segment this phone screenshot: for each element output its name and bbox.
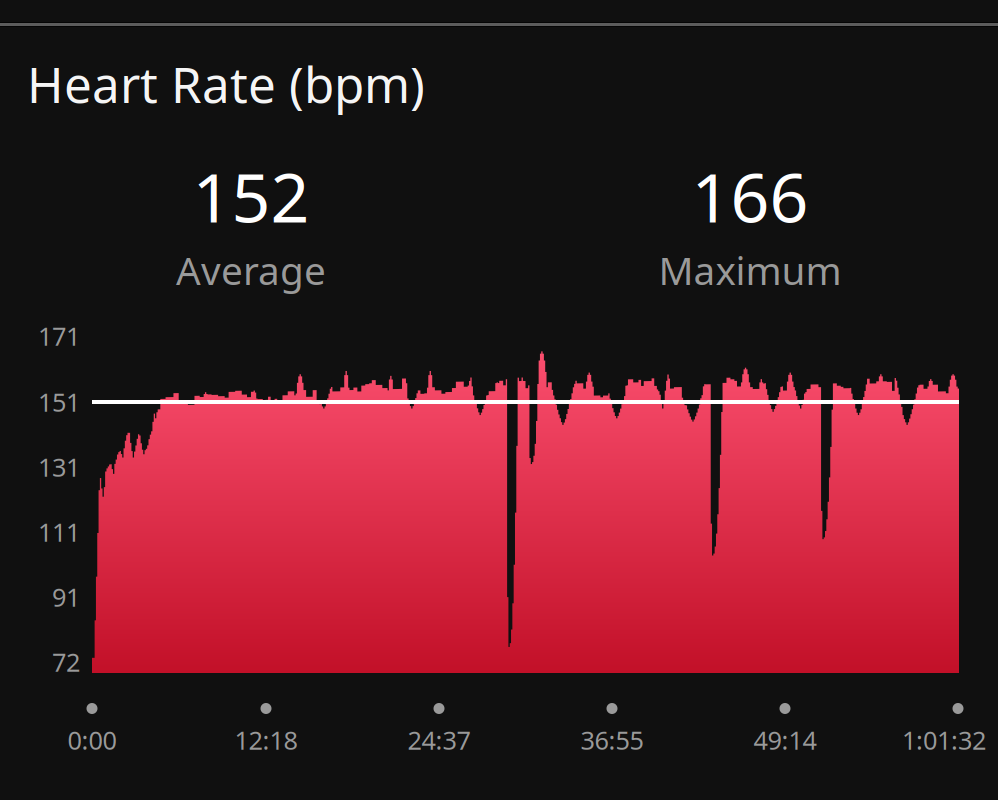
button[interactable]: 166 (590, 150, 910, 300)
staticText: 91 (52, 580, 80, 614)
staticText: 24:37 (407, 723, 470, 757)
button[interactable]: Heart rate chart, average 152 bpm, maxim… (92, 348, 959, 673)
staticText: Heart Rate (bpm) (27, 51, 425, 116)
button[interactable]: 152 (91, 150, 411, 300)
staticText: 49:14 (753, 723, 816, 757)
staticText: 72 (52, 645, 80, 679)
staticText: 0:00 (67, 723, 116, 757)
staticText: 12:18 (234, 723, 297, 757)
staticText: 36:55 (580, 723, 643, 757)
staticText: 1:01:32 (902, 723, 986, 757)
staticText: 111 (38, 515, 80, 549)
staticText: 166 (691, 151, 808, 241)
staticText: Maximum (658, 244, 841, 296)
staticText: 131 (38, 450, 80, 484)
staticText: Average (176, 244, 326, 296)
staticText: 152 (192, 151, 309, 241)
staticText: 171 (38, 319, 80, 353)
staticText: 151 (38, 385, 80, 419)
